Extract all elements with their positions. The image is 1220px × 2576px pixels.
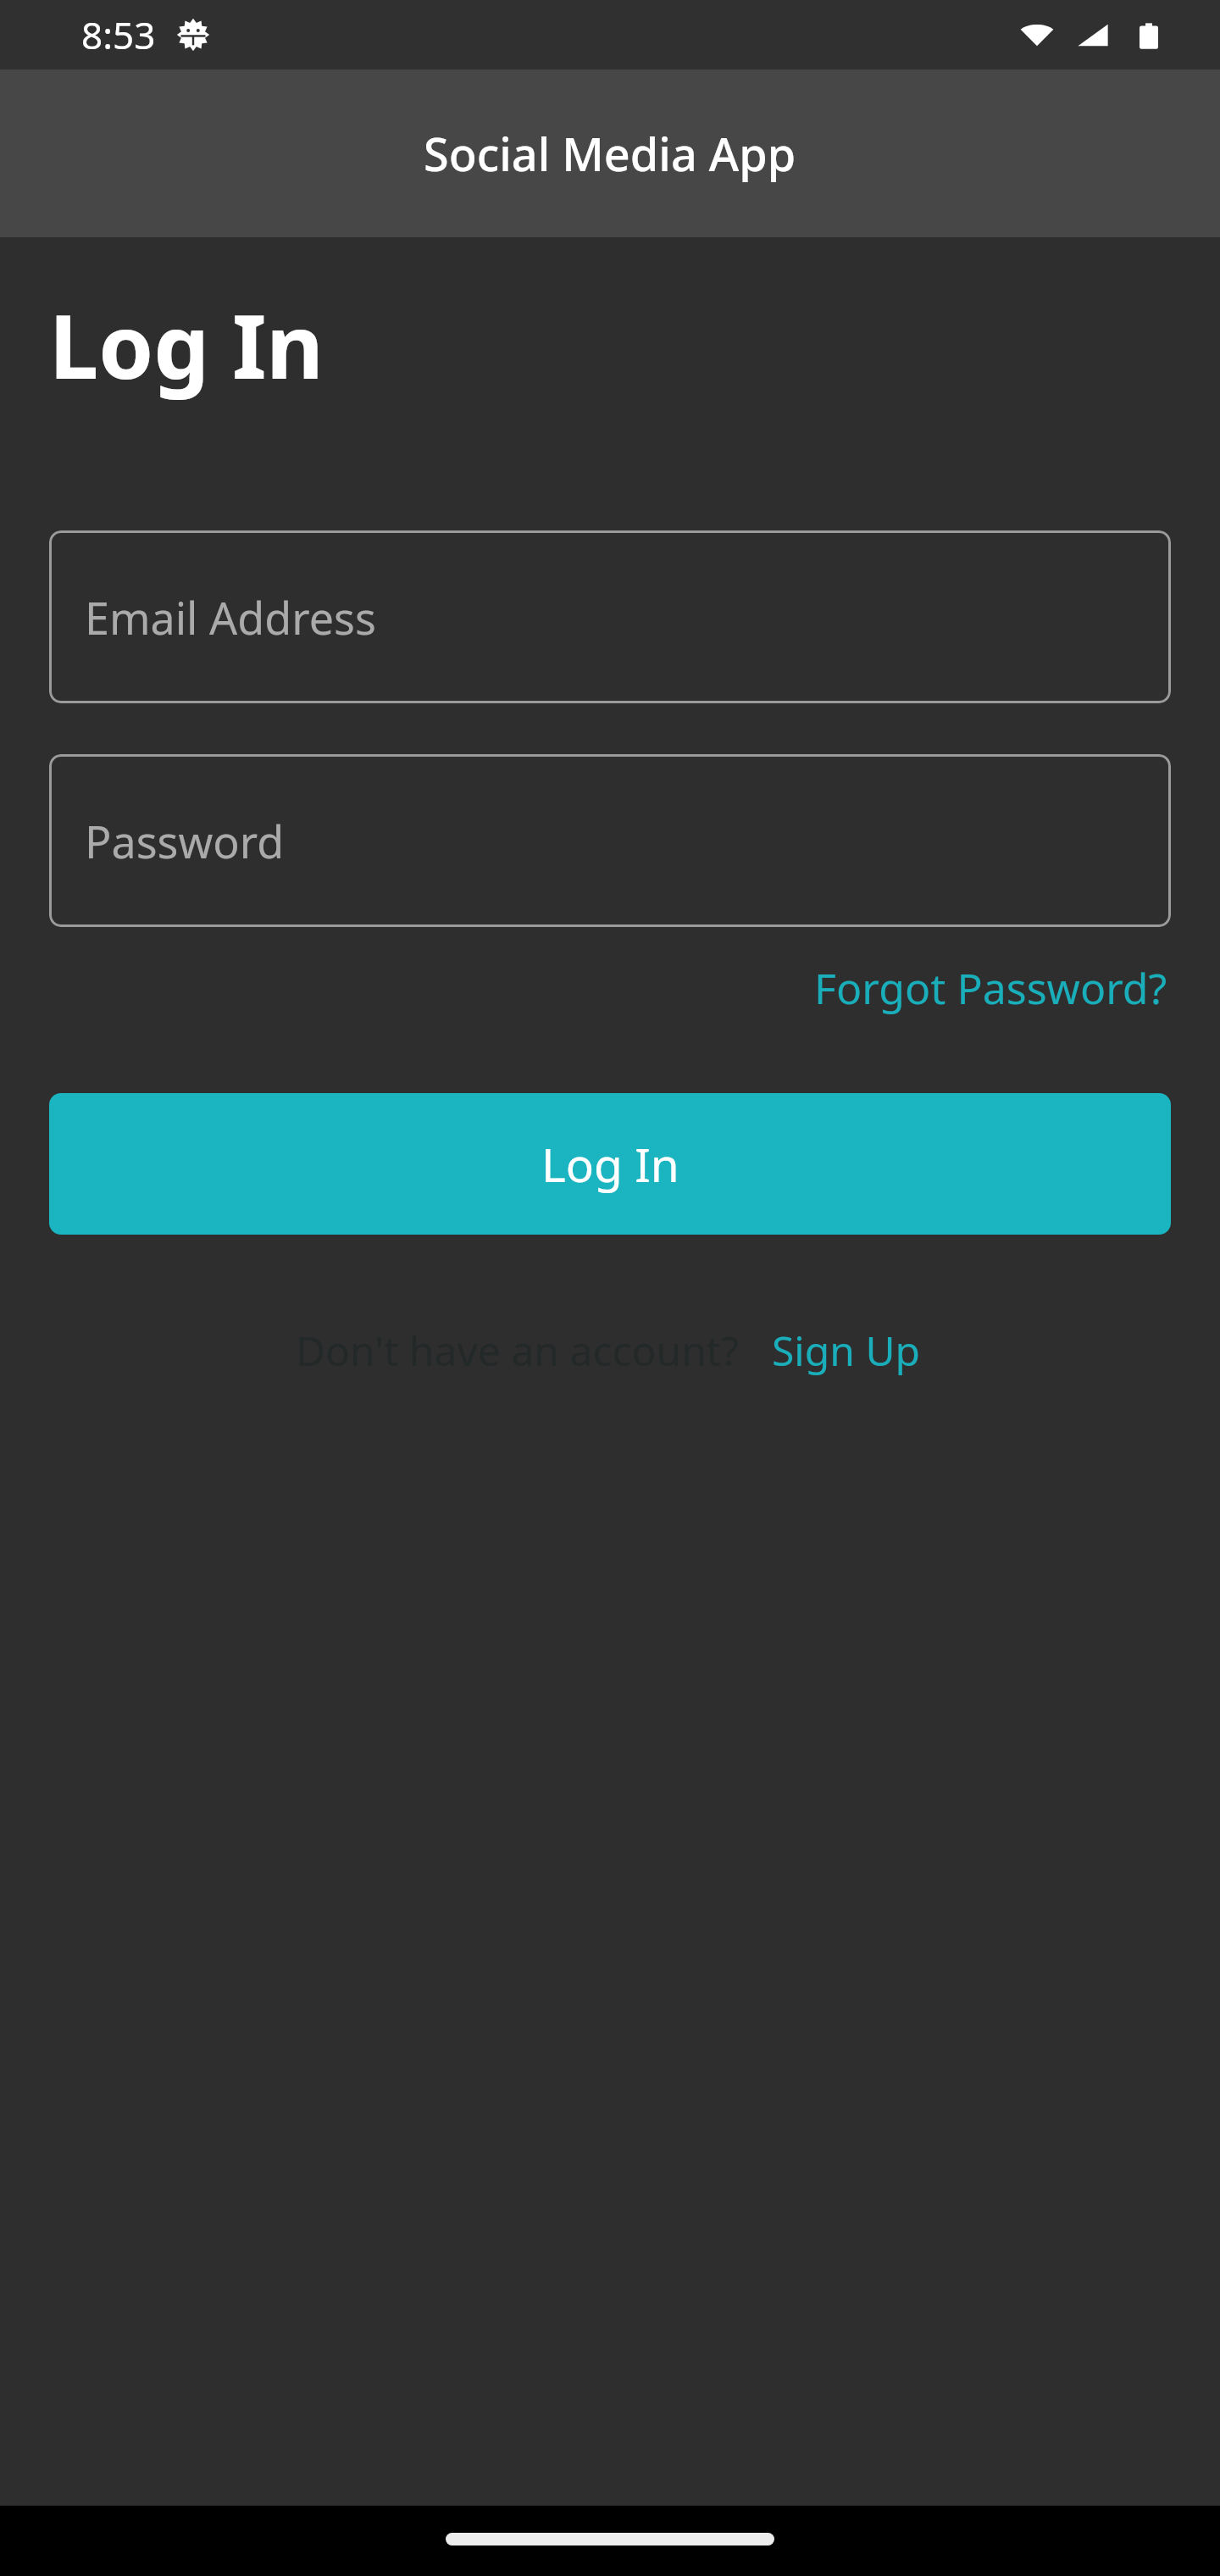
button[interactable]: Forgot Password? <box>811 952 1171 1024</box>
staticText: Password <box>85 811 285 871</box>
staticText: Don't have an account? <box>296 1323 740 1378</box>
other: Cellular signal <box>1074 16 1112 53</box>
button[interactable]: Log In <box>49 1093 1171 1235</box>
staticText: 8:53 <box>81 9 156 60</box>
staticText: Social Media App <box>424 122 796 185</box>
button[interactable]: Email Address <box>49 530 1171 703</box>
button[interactable]: Password <box>49 754 1171 927</box>
staticText: Forgot Password? <box>814 959 1167 1017</box>
staticText: Sign Up <box>772 1323 921 1378</box>
other: Battery <box>1130 16 1167 53</box>
other: Debug <box>175 16 212 53</box>
staticText: Log In <box>49 285 324 405</box>
staticText: Log In <box>541 1132 679 1196</box>
button[interactable]: Sign Up <box>768 1316 924 1385</box>
staticText: Email Address <box>85 587 376 647</box>
other: Wi-Fi <box>1018 16 1056 53</box>
